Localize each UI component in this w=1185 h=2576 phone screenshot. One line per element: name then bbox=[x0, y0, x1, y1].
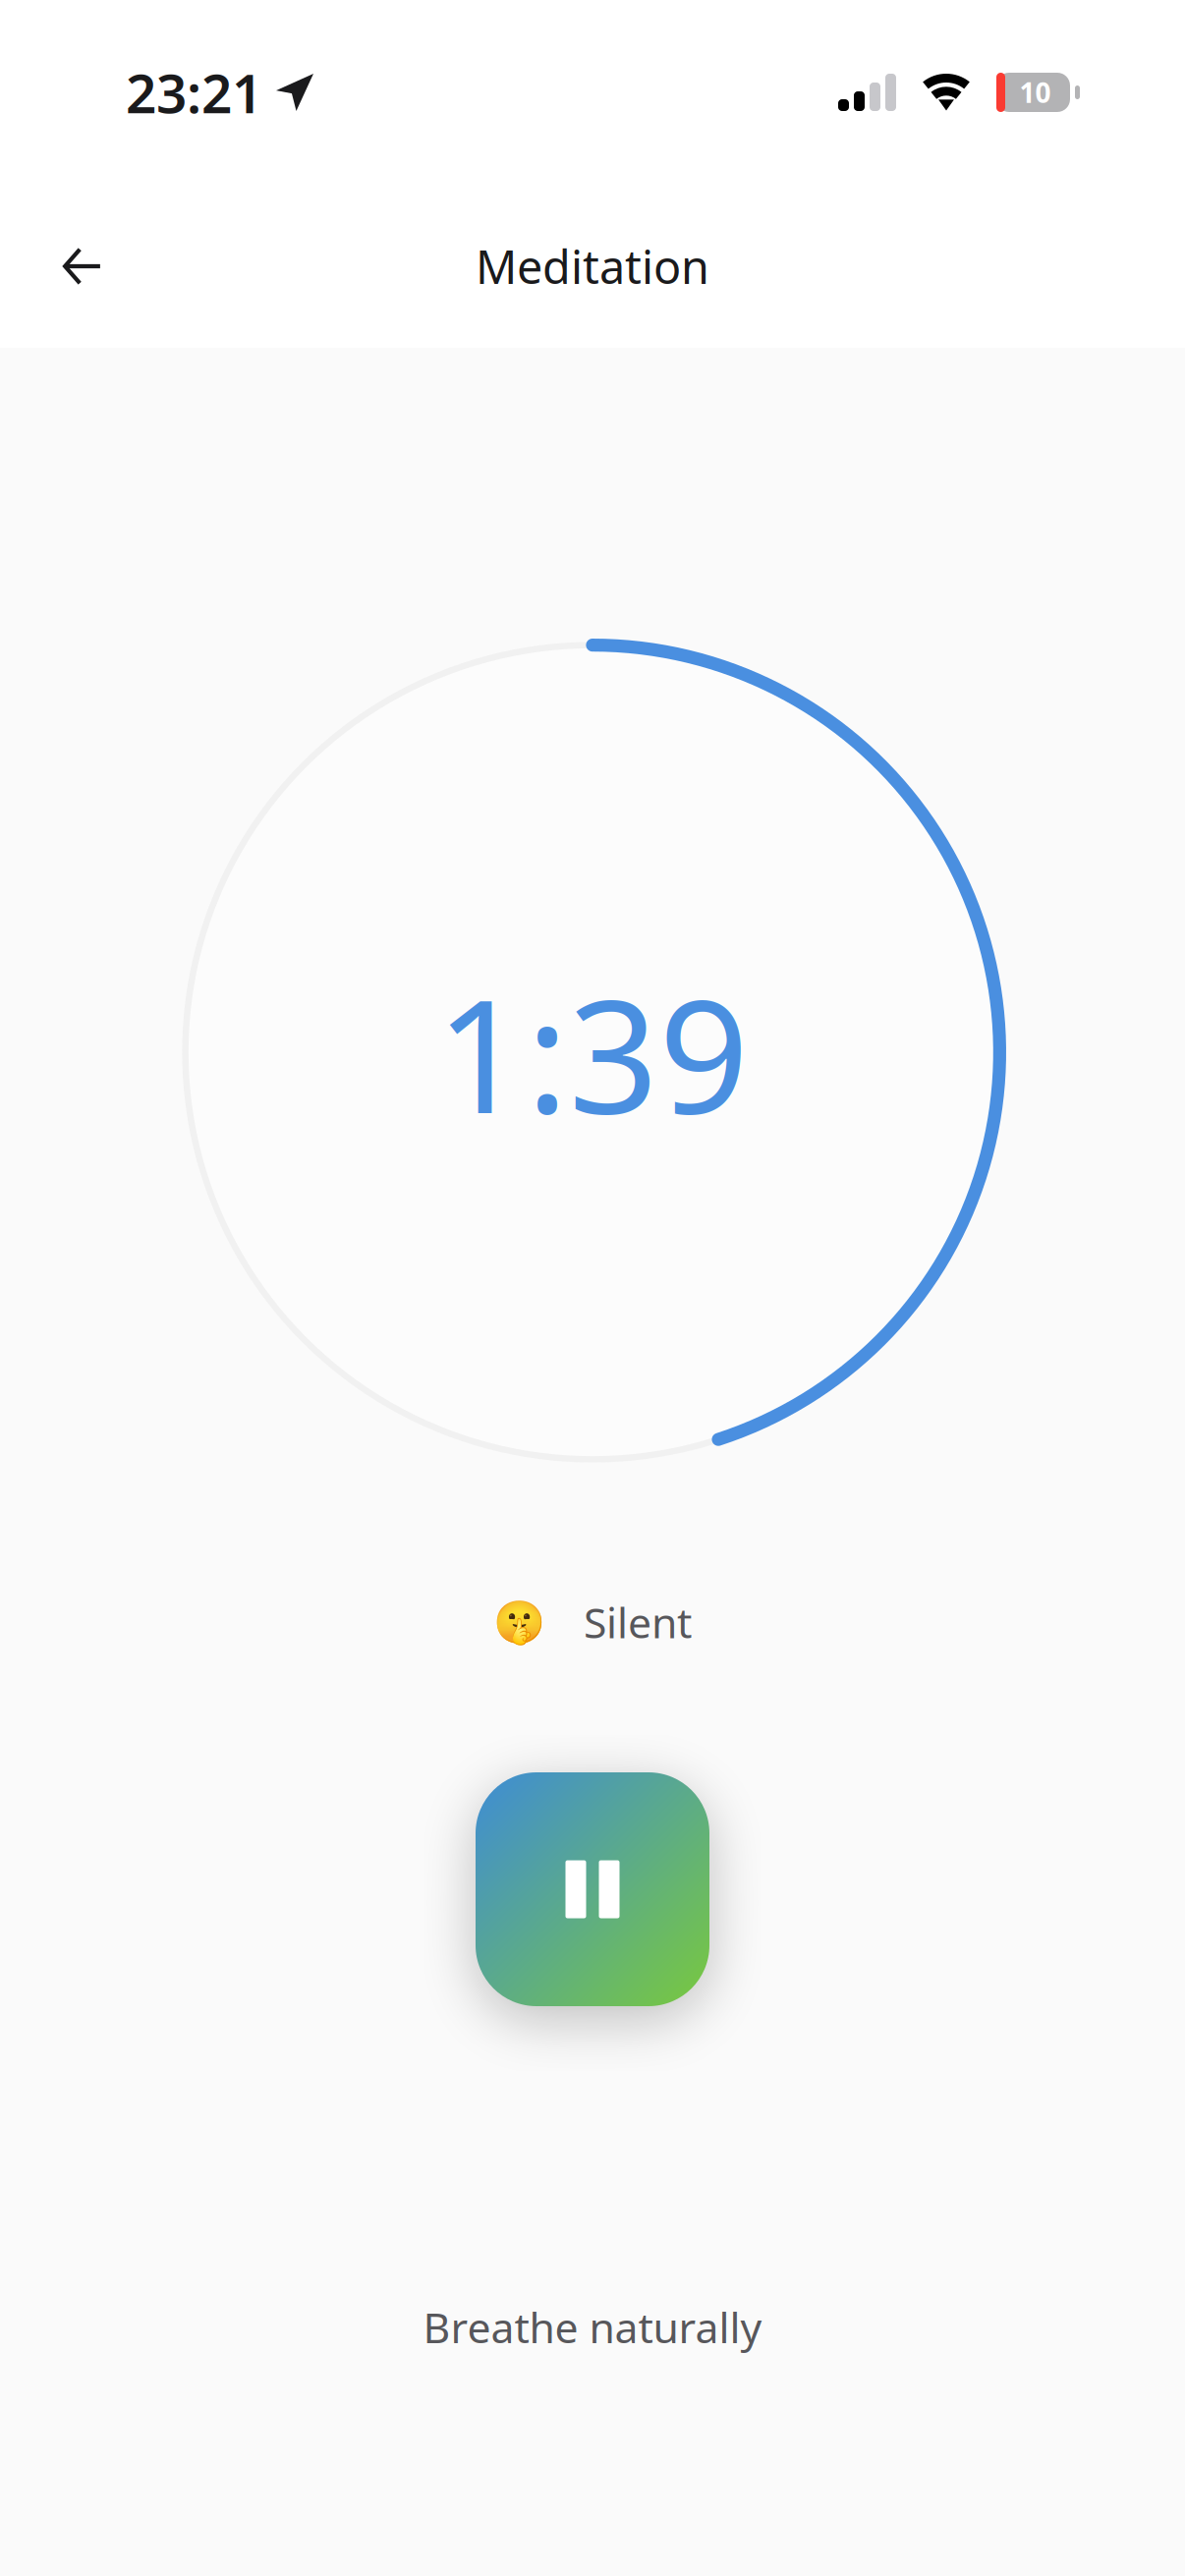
staticText: 23:21 bbox=[126, 57, 262, 128]
staticText: 10 bbox=[1019, 74, 1051, 111]
staticText: Breathe naturally bbox=[423, 2299, 762, 2355]
staticText: 🤫 bbox=[493, 1598, 545, 1646]
staticText: 1:39 bbox=[436, 948, 749, 1157]
staticText: Meditation bbox=[476, 236, 709, 297]
button[interactable]: Back bbox=[28, 212, 137, 320]
staticText: Silent bbox=[584, 1594, 692, 1650]
button[interactable]: Pause bbox=[476, 1772, 709, 2006]
